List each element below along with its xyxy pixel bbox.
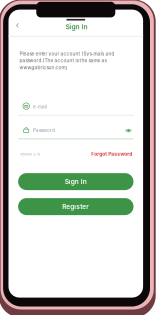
staticText: Forgot Password: [91, 151, 132, 157]
staticText: password.(The account is the same as: [19, 58, 106, 63]
staticText: Sign In: [65, 23, 87, 31]
button[interactable]: Back: [10, 20, 24, 31]
staticText: Password: [33, 127, 55, 133]
button[interactable]: Forgot Password: [88, 150, 132, 157]
button[interactable]: Sign In: [18, 173, 133, 190]
staticText: Sign In: [65, 178, 87, 185]
button[interactable]: Register: [18, 198, 133, 215]
staticText: Please enter your account (Sys-mail) and: [19, 51, 114, 56]
button[interactable]: Show password: [123, 126, 133, 135]
staticText: www.gabricsun.com): [19, 65, 67, 70]
staticText: e-mail: [33, 104, 47, 110]
staticText: Register: [62, 203, 89, 210]
staticText: Version 2.18: [20, 152, 40, 156]
